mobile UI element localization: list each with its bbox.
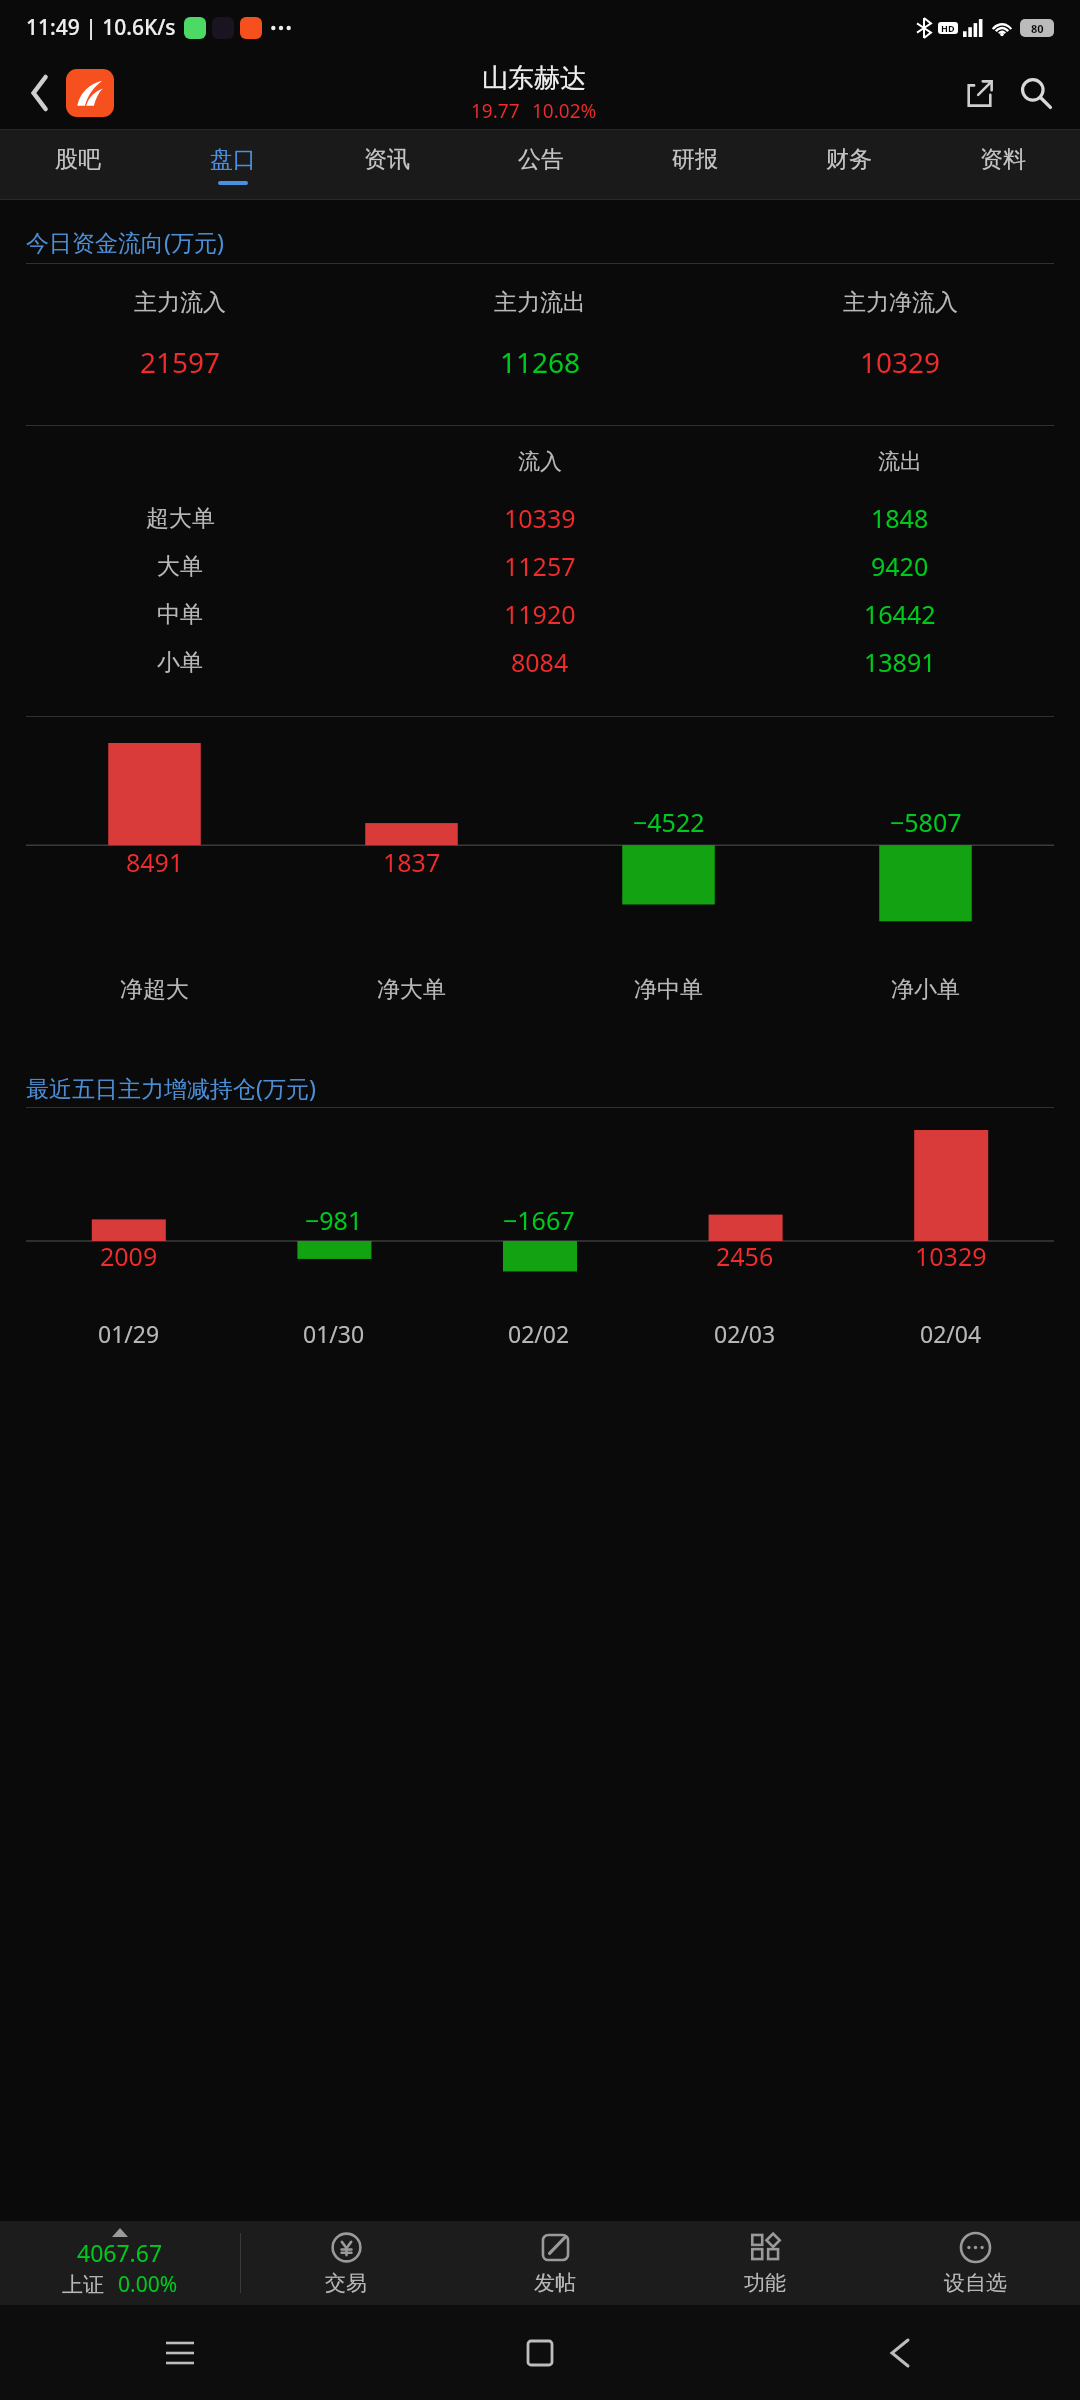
staticText: 11257 — [504, 549, 576, 583]
button[interactable]: 4067.67 — [0, 2221, 240, 2305]
staticText: 8491 — [126, 845, 184, 879]
staticText: 11268 — [500, 343, 581, 381]
staticText: 主力净流入 — [843, 288, 958, 317]
staticText: 10329 — [860, 343, 941, 381]
staticText: 净大单 — [377, 975, 446, 1004]
staticText: 资讯 — [364, 145, 410, 174]
staticText: 10.02% — [532, 98, 597, 124]
staticText: 19.77 — [471, 98, 520, 124]
staticText: 股吧 — [55, 145, 101, 174]
staticText: −4522 — [633, 805, 705, 839]
staticText: 16442 — [864, 597, 936, 631]
button[interactable]: Search — [1010, 67, 1062, 119]
staticText: 净超大 — [120, 975, 189, 1004]
staticText: −5807 — [890, 805, 962, 839]
staticText: 9420 — [871, 549, 929, 583]
button[interactable]: 交易 — [241, 2221, 450, 2305]
button[interactable]: 设自选 — [870, 2221, 1080, 2305]
staticText: 01/30 — [303, 1318, 365, 1349]
staticText: 21597 — [140, 343, 221, 381]
staticText: 公告 — [518, 145, 564, 174]
button[interactable]: Back — [877, 2330, 923, 2376]
staticText: 11:49 | 10.6K/s — [26, 13, 176, 42]
staticText: 流入 — [518, 448, 562, 476]
staticText: 财务 — [826, 145, 872, 174]
staticText: −1667 — [503, 1203, 575, 1237]
staticText: 中单 — [157, 600, 203, 629]
button[interactable]: 盘口 — [155, 130, 310, 200]
staticText: 最近五日主力增减持仓(万元) — [26, 1072, 316, 1103]
staticText: 1848 — [871, 501, 929, 535]
staticText: 净小单 — [891, 975, 960, 1004]
staticText: 今日资金流向(万元) — [26, 226, 224, 257]
button[interactable]: 研报 — [618, 130, 772, 200]
staticText: 10339 — [504, 501, 576, 535]
button[interactable]: 发帖 — [450, 2221, 660, 2305]
staticText: 山东赫达 — [482, 62, 586, 95]
button[interactable]: 功能 — [660, 2221, 870, 2305]
staticText: 11920 — [504, 597, 576, 631]
staticText: 大单 — [157, 552, 203, 581]
staticText: 主力流出 — [494, 288, 586, 317]
staticText: 功能 — [744, 2270, 786, 2296]
staticText: 超大单 — [146, 504, 215, 533]
button[interactable]: Recents — [157, 2330, 203, 2376]
staticText: 研报 — [672, 145, 718, 174]
staticText: 资料 — [980, 145, 1026, 174]
staticText: 盘口 — [210, 145, 256, 174]
staticText: −981 — [305, 1203, 363, 1237]
staticText: 80 — [1031, 21, 1044, 36]
staticText: 主力流入 — [134, 288, 226, 317]
button[interactable]: 公告 — [464, 130, 618, 200]
button[interactable]: App logo — [66, 69, 114, 117]
staticText: 02/04 — [920, 1318, 982, 1349]
staticText: 2009 — [100, 1239, 158, 1273]
staticText: 01/29 — [98, 1318, 160, 1349]
staticText: 交易 — [325, 2270, 367, 2296]
button[interactable]: 资料 — [926, 130, 1080, 200]
staticText: 10329 — [915, 1239, 987, 1273]
staticText: 4067.67 — [77, 2237, 163, 2268]
staticText: 2456 — [716, 1239, 774, 1273]
button[interactable]: 资讯 — [310, 130, 464, 200]
staticText: 设自选 — [944, 2270, 1007, 2296]
button[interactable]: 财务 — [772, 130, 926, 200]
button[interactable]: 股吧 — [0, 130, 155, 200]
staticText: 13891 — [864, 645, 936, 679]
staticText: 上证 — [62, 2272, 104, 2298]
staticText: 1837 — [383, 845, 441, 879]
staticText: HD — [941, 22, 955, 34]
button[interactable]: Share — [954, 68, 1004, 118]
staticText: 02/03 — [714, 1318, 776, 1349]
button[interactable]: Home — [517, 2330, 563, 2376]
staticText: 净中单 — [634, 975, 703, 1004]
staticText: 流出 — [878, 448, 922, 476]
staticText: 0.00% — [118, 2270, 178, 2299]
staticText: 小单 — [157, 648, 203, 677]
staticText: 发帖 — [534, 2270, 576, 2296]
staticText: 8084 — [511, 645, 569, 679]
staticText: 02/02 — [508, 1318, 570, 1349]
button[interactable]: Back — [18, 71, 62, 115]
